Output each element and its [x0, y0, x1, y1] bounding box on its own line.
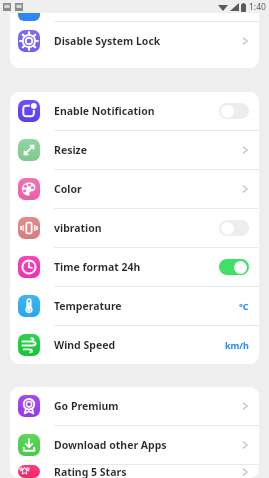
staticText: Time format 24h [54, 260, 219, 274]
other: Open [242, 35, 249, 47]
other: Open [242, 183, 249, 195]
button[interactable]: Toggle off [219, 220, 249, 236]
button[interactable]: Toggle off [219, 103, 249, 119]
button[interactable]: Resize [10, 131, 259, 169]
staticText: Go Premium [54, 399, 242, 413]
staticText: Enable Notification [54, 104, 219, 118]
button[interactable]: Wind Speed [10, 326, 259, 364]
staticText: °C [239, 300, 249, 312]
staticText: Rating 5 Stars [54, 465, 242, 478]
button[interactable]: Toggle on [219, 259, 249, 275]
button[interactable]: vibration [10, 209, 259, 247]
other: Open [242, 466, 249, 478]
button[interactable]: Color [10, 170, 259, 208]
button[interactable]: Rating 5 Stars [10, 465, 259, 478]
button[interactable]: Time format 24h [10, 248, 259, 286]
button[interactable]: Go Premium [10, 387, 259, 425]
other: Open [242, 400, 249, 412]
staticText: km/h [225, 339, 249, 351]
staticText: Download other Apps [54, 438, 242, 452]
staticText: Wind Speed [54, 338, 225, 352]
other: Open [242, 144, 249, 156]
staticText: 1:40 [249, 1, 266, 13]
staticText: Color [54, 182, 242, 196]
staticText: Disable System Lock [54, 34, 242, 48]
button[interactable]: Download other Apps [10, 426, 259, 464]
staticText: vibration [54, 221, 219, 235]
other: Open [242, 439, 249, 451]
staticText: Temperature [54, 299, 239, 313]
button[interactable]: Disable System Lock [10, 22, 259, 60]
button[interactable]: Temperature [10, 287, 259, 325]
button[interactable]: Enable Notification [10, 92, 259, 130]
staticText: Resize [54, 143, 242, 157]
